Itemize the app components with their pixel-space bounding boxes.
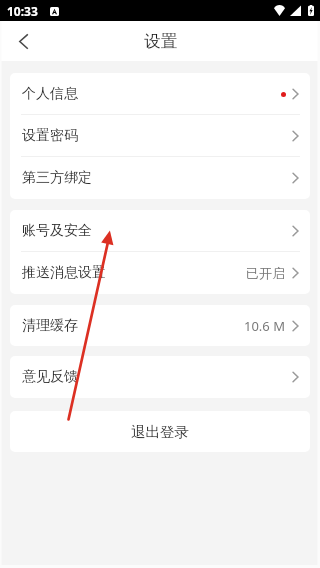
- staticText: 10.6 M: [244, 317, 285, 335]
- button[interactable]: 个人信息: [10, 73, 310, 115]
- staticText: 意见反馈: [22, 368, 78, 386]
- button[interactable]: 退出登录: [10, 411, 310, 452]
- staticText: 已开启: [246, 265, 285, 281]
- staticText: 设置: [144, 31, 177, 52]
- button[interactable]: 意见反馈: [10, 356, 310, 398]
- staticText: 清理缓存: [22, 317, 78, 335]
- button[interactable]: 清理缓存: [10, 305, 310, 346]
- staticText: 10:33: [7, 3, 38, 19]
- staticText: 账号及安全: [22, 222, 92, 240]
- staticText: 退出登录: [131, 423, 189, 441]
- staticText: 个人信息: [22, 85, 78, 103]
- button[interactable]: 第三方绑定: [10, 157, 310, 199]
- button[interactable]: 设置密码: [10, 115, 310, 157]
- staticText: 第三方绑定: [22, 169, 92, 187]
- button[interactable]: Back: [0, 21, 46, 61]
- button[interactable]: 账号及安全: [10, 210, 310, 252]
- button[interactable]: 推送消息设置: [10, 252, 310, 294]
- staticText: 推送消息设置: [22, 264, 106, 282]
- staticText: 设置密码: [22, 127, 78, 145]
